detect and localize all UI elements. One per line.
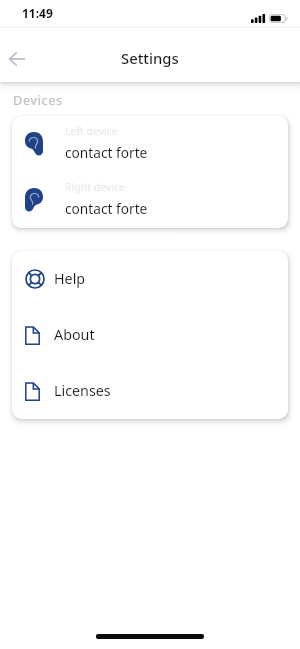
staticText: Settings xyxy=(121,48,179,68)
staticText: Right device xyxy=(65,180,125,194)
staticText: About xyxy=(54,325,95,344)
staticText: Devices xyxy=(13,91,63,108)
staticText: 11:49 xyxy=(22,5,53,21)
staticText: Left device xyxy=(65,124,118,138)
button[interactable]: Licenses xyxy=(12,363,288,419)
staticText: Help xyxy=(54,269,86,288)
button[interactable]: Right device xyxy=(12,172,288,228)
button[interactable]: Back xyxy=(0,42,34,76)
staticText: contact forte xyxy=(65,143,148,162)
button[interactable]: Help xyxy=(12,251,288,307)
staticText: Licenses xyxy=(54,381,111,400)
button[interactable]: Left device xyxy=(12,116,288,172)
button[interactable]: About xyxy=(12,307,288,363)
staticText: contact forte xyxy=(65,199,148,218)
